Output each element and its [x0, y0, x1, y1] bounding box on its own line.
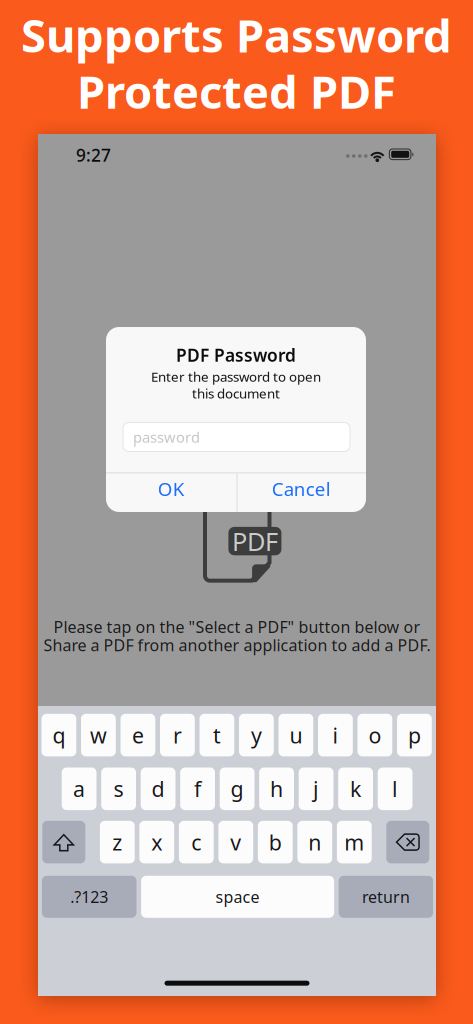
- staticText: q: [52, 721, 65, 749]
- button[interactable]: l: [378, 767, 412, 810]
- staticText: r: [173, 721, 182, 749]
- staticText: PDF: [232, 524, 278, 558]
- button[interactable]: .?123: [42, 876, 136, 918]
- staticText: y: [251, 721, 262, 749]
- button[interactable]: r: [160, 714, 195, 756]
- staticText: x: [151, 828, 162, 856]
- button[interactable]: space: [141, 876, 334, 918]
- staticText: 9:27: [76, 143, 111, 166]
- staticText: g: [231, 775, 244, 803]
- staticText: o: [368, 721, 381, 749]
- staticText: return: [362, 886, 410, 907]
- button[interactable]: x: [139, 821, 174, 863]
- staticText: Share a PDF from another application to …: [43, 634, 430, 656]
- button[interactable]: d: [141, 767, 175, 810]
- staticText: j: [313, 775, 319, 803]
- staticText: d: [152, 775, 165, 803]
- staticText: i: [332, 721, 338, 749]
- button[interactable]: p: [397, 714, 432, 756]
- button[interactable]: k: [338, 767, 373, 810]
- staticText: Enter the password to open: [151, 368, 321, 385]
- staticText: z: [112, 828, 122, 856]
- button[interactable]: t: [199, 714, 234, 756]
- button[interactable]: Cancel: [236, 469, 366, 508]
- staticText: Cancel: [272, 476, 331, 501]
- button[interactable]: return: [339, 876, 433, 918]
- staticText: PDF Password: [176, 343, 296, 366]
- button[interactable]: w: [81, 714, 116, 756]
- staticText: m: [344, 828, 364, 856]
- staticText: c: [191, 828, 201, 856]
- button[interactable]: q: [41, 714, 76, 756]
- button[interactable]: a: [62, 767, 96, 810]
- button[interactable]: e: [120, 714, 155, 756]
- staticText: h: [270, 775, 283, 803]
- staticText: password: [133, 427, 200, 447]
- staticText: a: [73, 775, 85, 803]
- button[interactable]: s: [101, 767, 136, 810]
- button[interactable]: OK: [106, 469, 236, 508]
- button[interactable]: y: [239, 714, 274, 756]
- staticText: v: [230, 828, 241, 856]
- button[interactable]: z: [100, 821, 135, 863]
- staticText: u: [289, 721, 302, 749]
- staticText: .?123: [70, 886, 108, 907]
- button[interactable]: m: [337, 821, 372, 863]
- staticText: k: [350, 775, 361, 803]
- staticText: w: [90, 721, 107, 749]
- button[interactable]: o: [357, 714, 392, 756]
- staticText: space: [216, 886, 260, 907]
- staticText: b: [269, 828, 282, 856]
- staticText: s: [114, 775, 124, 803]
- button[interactable]: b: [258, 821, 293, 863]
- staticText: l: [392, 775, 398, 803]
- staticText: OK: [158, 476, 185, 501]
- staticText: n: [308, 828, 321, 856]
- button[interactable]: g: [220, 767, 254, 810]
- button[interactable]: Shift: [42, 821, 85, 863]
- button[interactable]: j: [299, 767, 333, 810]
- button[interactable]: v: [218, 821, 253, 863]
- button[interactable]: u: [278, 714, 313, 756]
- button[interactable]: i: [318, 714, 353, 756]
- staticText: t: [213, 721, 221, 749]
- button[interactable]: c: [179, 821, 214, 863]
- staticText: e: [132, 721, 144, 749]
- staticText: p: [408, 721, 421, 749]
- button[interactable]: Delete: [386, 821, 429, 863]
- button[interactable]: n: [297, 821, 332, 863]
- staticText: this document: [192, 384, 280, 402]
- button[interactable]: h: [259, 767, 294, 810]
- staticText: f: [194, 775, 201, 803]
- staticText: Supports Password: [21, 5, 452, 65]
- staticText: Please tap on the "Select a PDF" button …: [53, 616, 420, 637]
- button[interactable]: f: [180, 767, 215, 810]
- staticText: Protected PDF: [77, 61, 396, 121]
